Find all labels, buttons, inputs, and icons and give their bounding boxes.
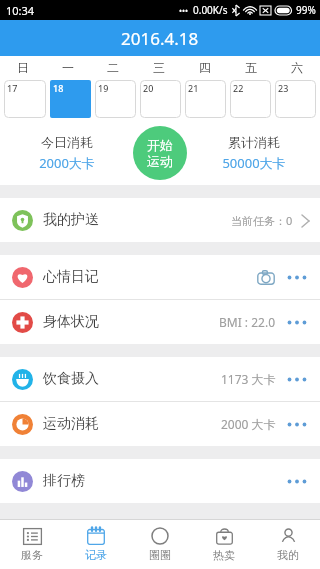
staticText: BMI : 22.0	[219, 314, 276, 330]
staticText: 2000大卡	[39, 154, 95, 172]
button[interactable]: 17	[4, 80, 46, 118]
staticText: 一	[62, 60, 74, 75]
staticText: 记录	[85, 548, 107, 562]
staticText: 19	[98, 82, 109, 94]
staticText: 22	[233, 82, 244, 94]
staticText: 四	[199, 60, 211, 75]
staticText: 饮食摄入	[43, 370, 99, 388]
button[interactable]: More options	[284, 312, 310, 332]
staticText: 我的护送	[43, 211, 99, 229]
staticText: 18	[53, 82, 64, 94]
button[interactable]: 18	[50, 80, 91, 118]
button[interactable]: 开始	[133, 126, 187, 180]
button[interactable]: 累计消耗	[187, 120, 320, 185]
staticText: 运动消耗	[43, 415, 99, 433]
button[interactable]: 21	[185, 80, 226, 118]
staticText: 2016.4.18	[121, 27, 199, 50]
staticText: 今日消耗	[41, 134, 93, 150]
button[interactable]: 身体状况	[0, 300, 320, 344]
staticText: 1173 大卡	[221, 371, 276, 387]
staticText: 20	[143, 82, 154, 94]
button[interactable]: 我的护送	[0, 198, 320, 242]
staticText: •••	[179, 5, 189, 16]
button[interactable]: 热卖	[192, 520, 256, 569]
button[interactable]: Camera	[256, 267, 276, 287]
staticText: 二	[107, 60, 119, 75]
button[interactable]: 19	[95, 80, 136, 118]
staticText: 心情日记	[43, 268, 99, 286]
button[interactable]: More options	[284, 369, 310, 389]
button[interactable]: 运动消耗	[0, 402, 320, 446]
staticText: 17	[7, 82, 18, 94]
button[interactable]: 圈圈	[128, 520, 192, 569]
button[interactable]: 排行榜	[0, 459, 320, 503]
staticText: 2000 大卡	[221, 416, 276, 432]
button[interactable]: 22	[230, 80, 271, 118]
staticText: 服务	[21, 548, 43, 562]
button[interactable]: 20	[140, 80, 181, 118]
staticText: 累计消耗	[228, 134, 280, 150]
button[interactable]: 心情日记	[0, 255, 320, 299]
staticText: 0.00K/s	[193, 3, 228, 17]
staticText: 当前任务：0	[231, 213, 293, 228]
staticText: 五	[245, 60, 257, 75]
button[interactable]: 今日消耗	[0, 120, 133, 185]
staticText: 身体状况	[43, 313, 99, 331]
button[interactable]: More options	[284, 267, 310, 287]
button[interactable]: 我的	[256, 520, 320, 569]
staticText: 99%	[296, 3, 316, 17]
staticText: 排行榜	[43, 472, 85, 490]
button[interactable]: 服务	[0, 520, 64, 569]
button[interactable]: More options	[284, 471, 310, 491]
staticText: 开始	[147, 137, 173, 153]
staticText: 三	[153, 60, 165, 75]
staticText: 圈圈	[149, 548, 171, 562]
staticText: 运动	[147, 153, 173, 169]
staticText: 热卖	[213, 548, 235, 562]
button[interactable]: 23	[275, 80, 316, 118]
button[interactable]: 记录	[64, 520, 128, 569]
staticText: 日	[17, 60, 29, 75]
button[interactable]: 饮食摄入	[0, 357, 320, 401]
staticText: 23	[278, 82, 289, 94]
staticText: 10:34	[6, 3, 35, 18]
staticText: 21	[188, 82, 199, 94]
staticText: 我的	[277, 548, 299, 562]
staticText: 六	[291, 60, 303, 75]
staticText: 50000大卡	[222, 154, 286, 172]
button[interactable]: More options	[284, 414, 310, 434]
